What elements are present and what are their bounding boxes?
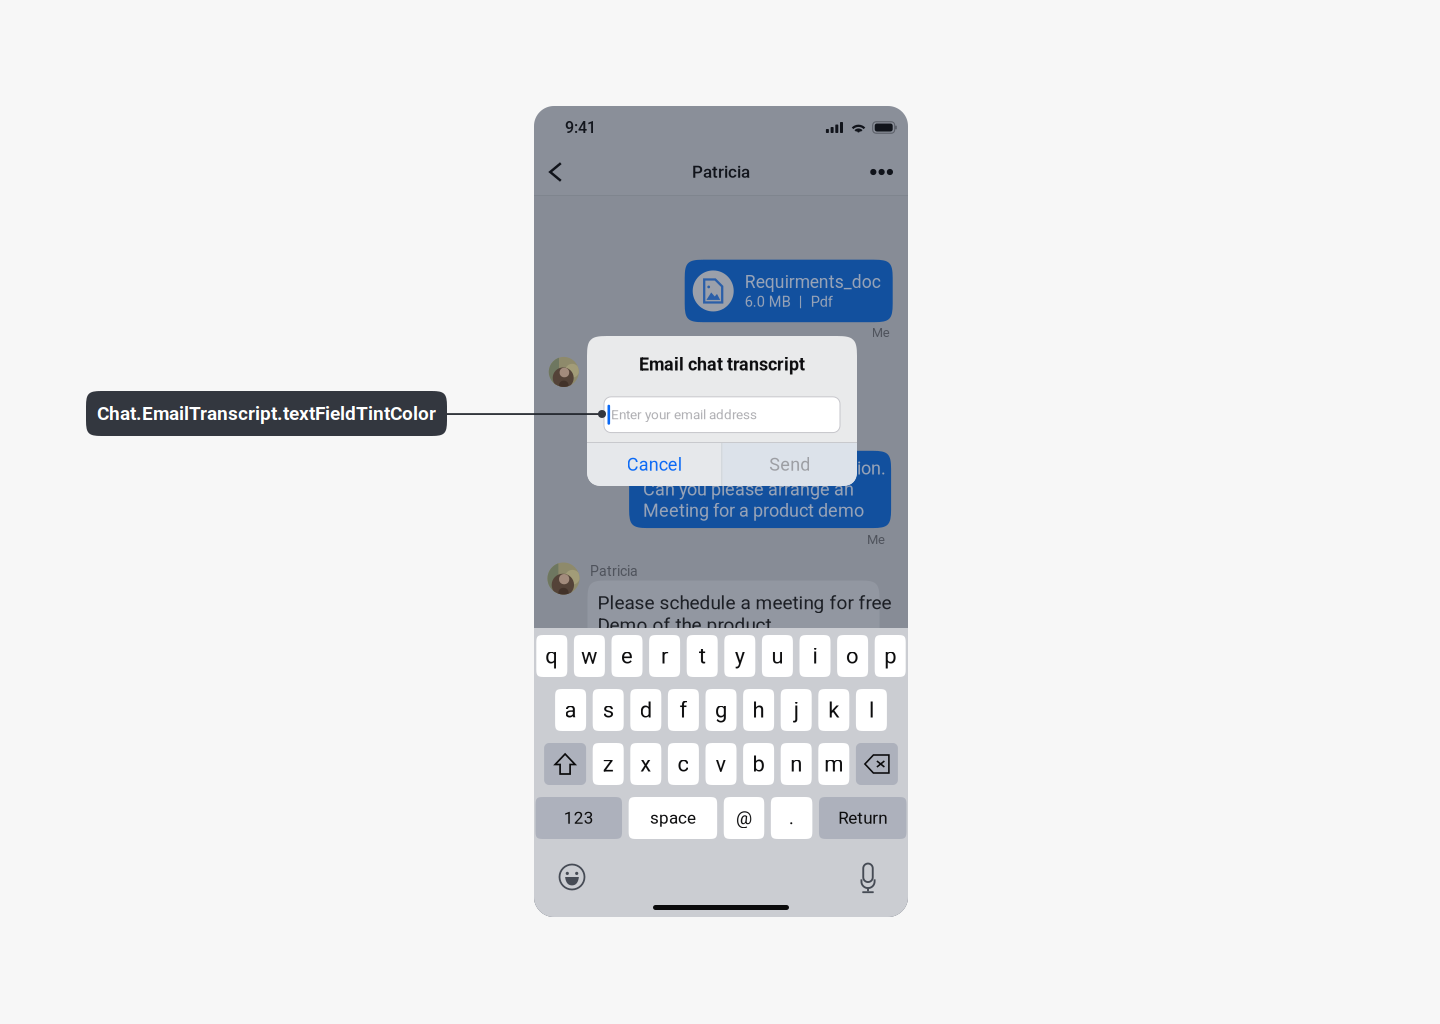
button[interactable]: u	[762, 635, 793, 677]
staticText: c	[677, 751, 689, 777]
staticText: Me	[867, 532, 885, 547]
staticText: m	[824, 751, 843, 777]
staticText: h	[753, 697, 765, 723]
button[interactable]: h	[743, 689, 774, 731]
staticText: b	[753, 751, 765, 777]
staticText: i	[812, 643, 817, 669]
staticText: u	[771, 643, 783, 669]
button[interactable]: f	[668, 689, 699, 731]
button[interactable]: a	[555, 689, 586, 731]
button[interactable]: c	[668, 743, 699, 785]
staticText: g	[715, 697, 727, 723]
staticText: x	[640, 751, 651, 777]
staticText: w	[581, 643, 598, 669]
staticText: Me	[872, 325, 890, 340]
button[interactable]: o	[837, 635, 868, 677]
staticText: d	[640, 697, 652, 723]
button[interactable]: Shift	[544, 743, 586, 785]
staticText: a	[565, 697, 577, 723]
button[interactable]: l	[856, 689, 887, 731]
button[interactable]: Return	[819, 797, 906, 839]
button[interactable]: .	[771, 797, 812, 839]
button[interactable]: t	[687, 635, 718, 677]
button[interactable]: v	[705, 743, 736, 785]
staticText: 123	[564, 808, 594, 828]
button[interactable]: p	[875, 635, 906, 677]
button[interactable]: Cancel	[587, 443, 722, 486]
button[interactable]: Emoji keyboard	[555, 860, 589, 894]
staticText: n	[790, 751, 802, 777]
button[interactable]: w	[574, 635, 605, 677]
button[interactable]: k	[818, 689, 849, 731]
staticText: 6.0 MB | Pdf	[745, 293, 833, 310]
button[interactable]: q	[536, 635, 567, 677]
staticText: v	[715, 751, 726, 777]
staticText: r	[661, 643, 668, 669]
button[interactable]: x	[630, 743, 661, 785]
staticText: Chat.EmailTranscript.textFieldTintColor	[97, 402, 436, 425]
button[interactable]: More options	[856, 149, 902, 195]
staticText: Thank you for sharing your information.	[597, 377, 806, 419]
button[interactable]: Back	[535, 149, 576, 195]
staticText: t	[699, 643, 706, 669]
staticText: Enter your email address	[611, 407, 757, 423]
staticText: f	[679, 697, 687, 723]
button[interactable]: g	[705, 689, 736, 731]
button[interactable]: @	[724, 797, 764, 839]
staticText: l	[869, 697, 874, 723]
button[interactable]: s	[593, 689, 624, 731]
staticText: @	[736, 807, 752, 829]
staticText: 9:41	[565, 118, 596, 137]
button[interactable]: Dictate	[851, 860, 885, 894]
staticText: space	[650, 808, 696, 828]
button[interactable]: m	[818, 743, 849, 785]
button[interactable]: r	[649, 635, 680, 677]
button[interactable]: b	[743, 743, 774, 785]
staticText: q	[545, 643, 558, 669]
button[interactable]: j	[781, 689, 812, 731]
staticText: s	[603, 697, 614, 723]
staticText: Cancel	[627, 454, 682, 475]
staticText: y	[735, 643, 745, 669]
staticText: j	[794, 697, 799, 723]
button[interactable]: Chat.EmailTranscript.textFieldTintColor	[86, 391, 447, 436]
button[interactable]: y	[724, 635, 755, 677]
button[interactable]: e	[611, 635, 642, 677]
button[interactable]: Requirments_doc	[685, 260, 893, 322]
staticText: Please schedule a meeting for free Demo …	[597, 591, 891, 636]
button[interactable]: Send	[722, 443, 857, 486]
staticText: Thanks for your prompt action. Can you p…	[643, 458, 886, 521]
staticText: Patricia	[692, 162, 750, 182]
staticText: Requirments_doc	[745, 272, 881, 292]
button[interactable]: z	[593, 743, 624, 785]
staticText: z	[603, 751, 614, 777]
button[interactable]: Delete	[856, 743, 898, 785]
button[interactable]: n	[781, 743, 812, 785]
staticText: p	[884, 643, 896, 669]
button[interactable]: space	[629, 797, 717, 839]
staticText: e	[621, 643, 633, 669]
staticText: k	[828, 697, 839, 723]
button[interactable]: d	[630, 689, 661, 731]
staticText: Return	[838, 808, 887, 828]
staticText: Email chat transcript	[639, 354, 805, 375]
staticText: Send	[769, 454, 810, 475]
button[interactable]: i	[799, 635, 830, 677]
staticText: Patricia	[590, 563, 638, 579]
staticText: o	[846, 643, 859, 669]
button[interactable]: 123	[535, 797, 622, 839]
staticText: .	[789, 807, 794, 829]
